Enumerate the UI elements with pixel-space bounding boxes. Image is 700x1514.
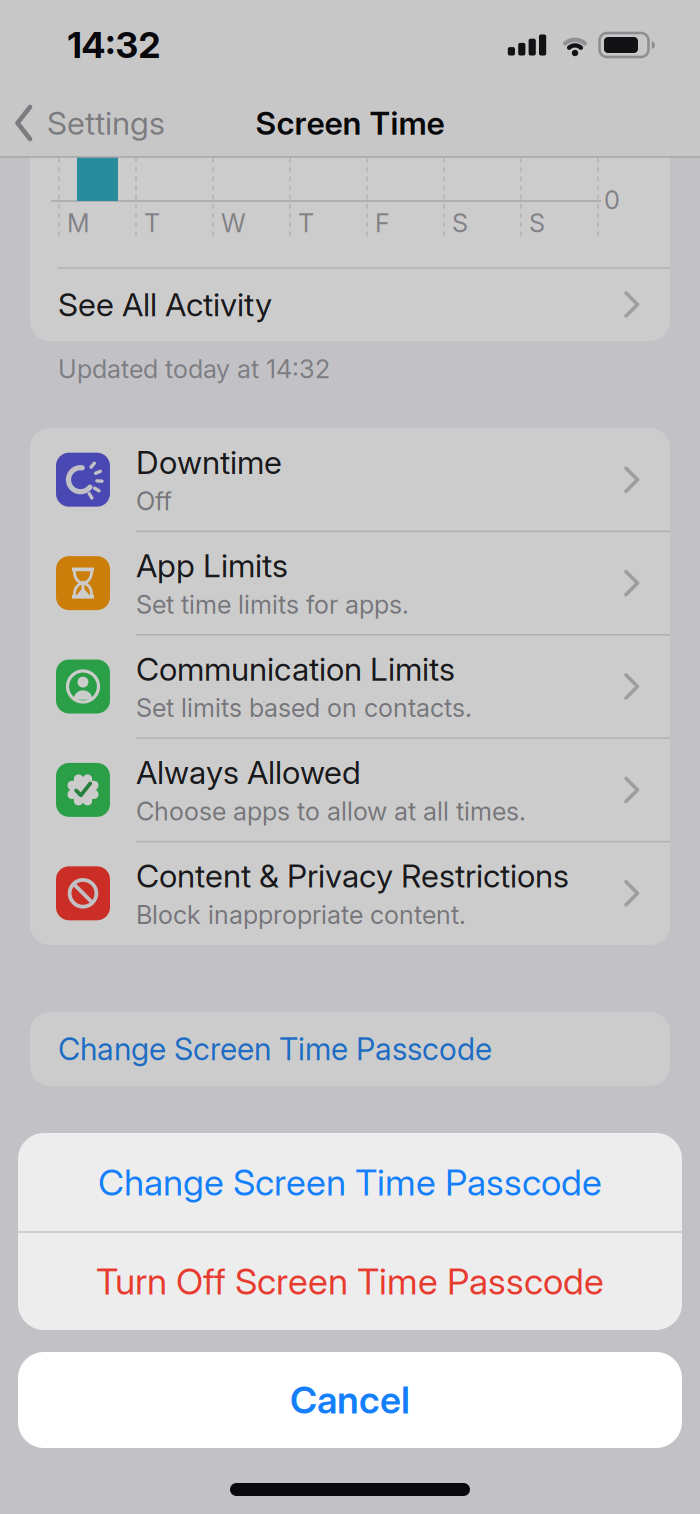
staticText: See All Activity bbox=[58, 286, 272, 323]
staticText: Downtime bbox=[136, 443, 282, 481]
staticText: Turn Off Screen Time Passcode bbox=[96, 1260, 604, 1303]
staticText: Set time limits for apps. bbox=[136, 589, 409, 619]
staticText: 14:32 bbox=[67, 24, 160, 66]
button[interactable]: Always Allowed bbox=[30, 738, 670, 842]
staticText: Cancel bbox=[290, 1378, 410, 1422]
staticText: F bbox=[375, 208, 390, 238]
staticText: M bbox=[67, 208, 90, 238]
staticText: S bbox=[452, 208, 468, 238]
button[interactable]: Downtime bbox=[30, 428, 670, 531]
staticText: S bbox=[529, 208, 545, 238]
button[interactable]: Change Screen Time Passcode bbox=[18, 1133, 682, 1231]
staticText: Change Screen Time Passcode bbox=[98, 1161, 602, 1204]
staticText: Updated today at 14:32 bbox=[58, 354, 330, 384]
staticText: Communication Limits bbox=[136, 650, 455, 688]
staticText: 0 bbox=[604, 185, 620, 215]
staticText: Set limits based on contacts. bbox=[136, 693, 472, 723]
staticText: T bbox=[144, 208, 160, 238]
button[interactable]: See All Activity bbox=[30, 268, 670, 341]
button[interactable]: App Limits bbox=[30, 531, 670, 635]
button[interactable]: Settings bbox=[14, 98, 244, 148]
staticText: Block inappropriate content. bbox=[136, 900, 466, 930]
staticText: Choose apps to allow at all times. bbox=[136, 796, 526, 826]
staticText: Change Screen Time Passcode bbox=[58, 1031, 492, 1067]
staticText: App Limits bbox=[136, 547, 288, 585]
staticText: Content & Privacy Restrictions bbox=[136, 857, 569, 895]
button[interactable]: Cancel bbox=[18, 1352, 682, 1448]
staticText: Screen Time bbox=[255, 104, 444, 142]
button[interactable]: Content & Privacy Restrictions bbox=[30, 842, 670, 945]
staticText: Always Allowed bbox=[136, 754, 361, 791]
staticText: T bbox=[298, 208, 314, 238]
button[interactable]: Change Screen Time Passcode bbox=[30, 1012, 670, 1086]
staticText: Off bbox=[136, 486, 172, 516]
button[interactable]: Communication Limits bbox=[30, 635, 670, 738]
button[interactable]: Turn Off Screen Time Passcode bbox=[18, 1233, 682, 1330]
staticText: W bbox=[221, 208, 246, 238]
staticText: Settings bbox=[47, 104, 165, 142]
